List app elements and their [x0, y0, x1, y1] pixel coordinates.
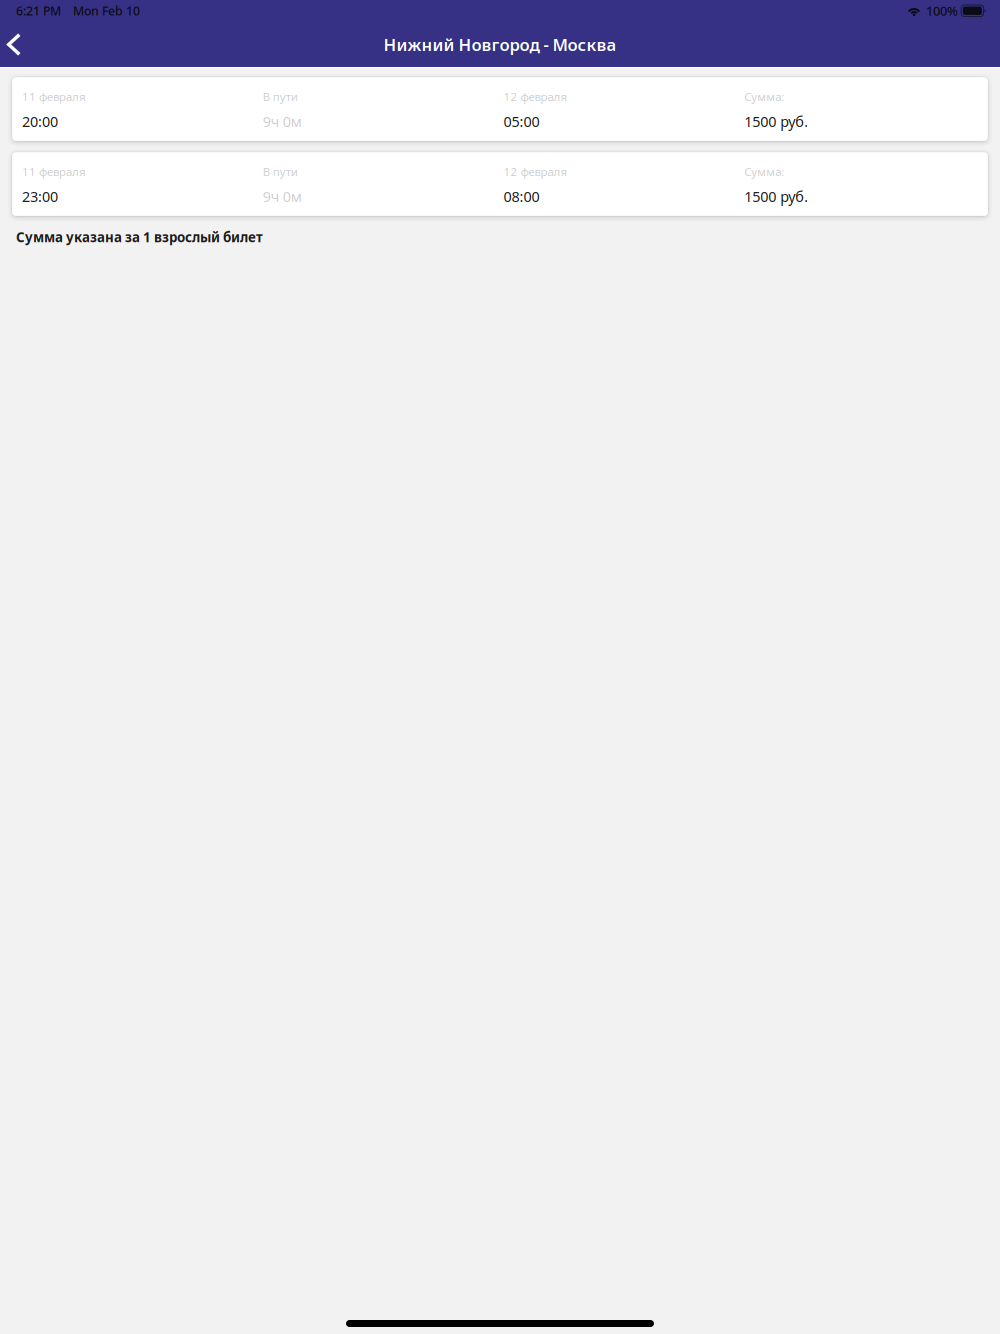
staticText: Сумма указана за 1 взрослый билет	[16, 228, 263, 246]
staticText: В пути	[263, 89, 298, 104]
staticText: 9ч 0м	[263, 187, 302, 206]
staticText: 23:00	[22, 187, 58, 206]
button[interactable]: 11 февраля	[12, 77, 988, 141]
staticText: 12 февраля	[503, 164, 567, 179]
staticText: 9ч 0м	[263, 112, 302, 131]
staticText: 08:00	[503, 187, 539, 206]
staticText: 05:00	[503, 112, 539, 131]
button[interactable]: 11 февраля	[12, 152, 988, 216]
staticText: 1500 руб.	[744, 187, 808, 206]
staticText: 11 февраля	[22, 164, 86, 179]
staticText: Mon Feb 10	[73, 2, 140, 19]
staticText: В пути	[263, 164, 298, 179]
staticText: Сумма:	[744, 89, 784, 104]
staticText: 100%	[926, 2, 958, 19]
staticText: Нижний Новгород - Москва	[383, 33, 616, 56]
staticText: 1500 руб.	[744, 112, 808, 131]
staticText: 6:21 PM	[16, 2, 61, 19]
staticText: Сумма:	[744, 164, 784, 179]
staticText: 11 февраля	[22, 89, 86, 104]
staticText: 20:00	[22, 112, 58, 131]
button[interactable]: Back	[0, 22, 38, 66]
staticText: 12 февраля	[503, 89, 567, 104]
